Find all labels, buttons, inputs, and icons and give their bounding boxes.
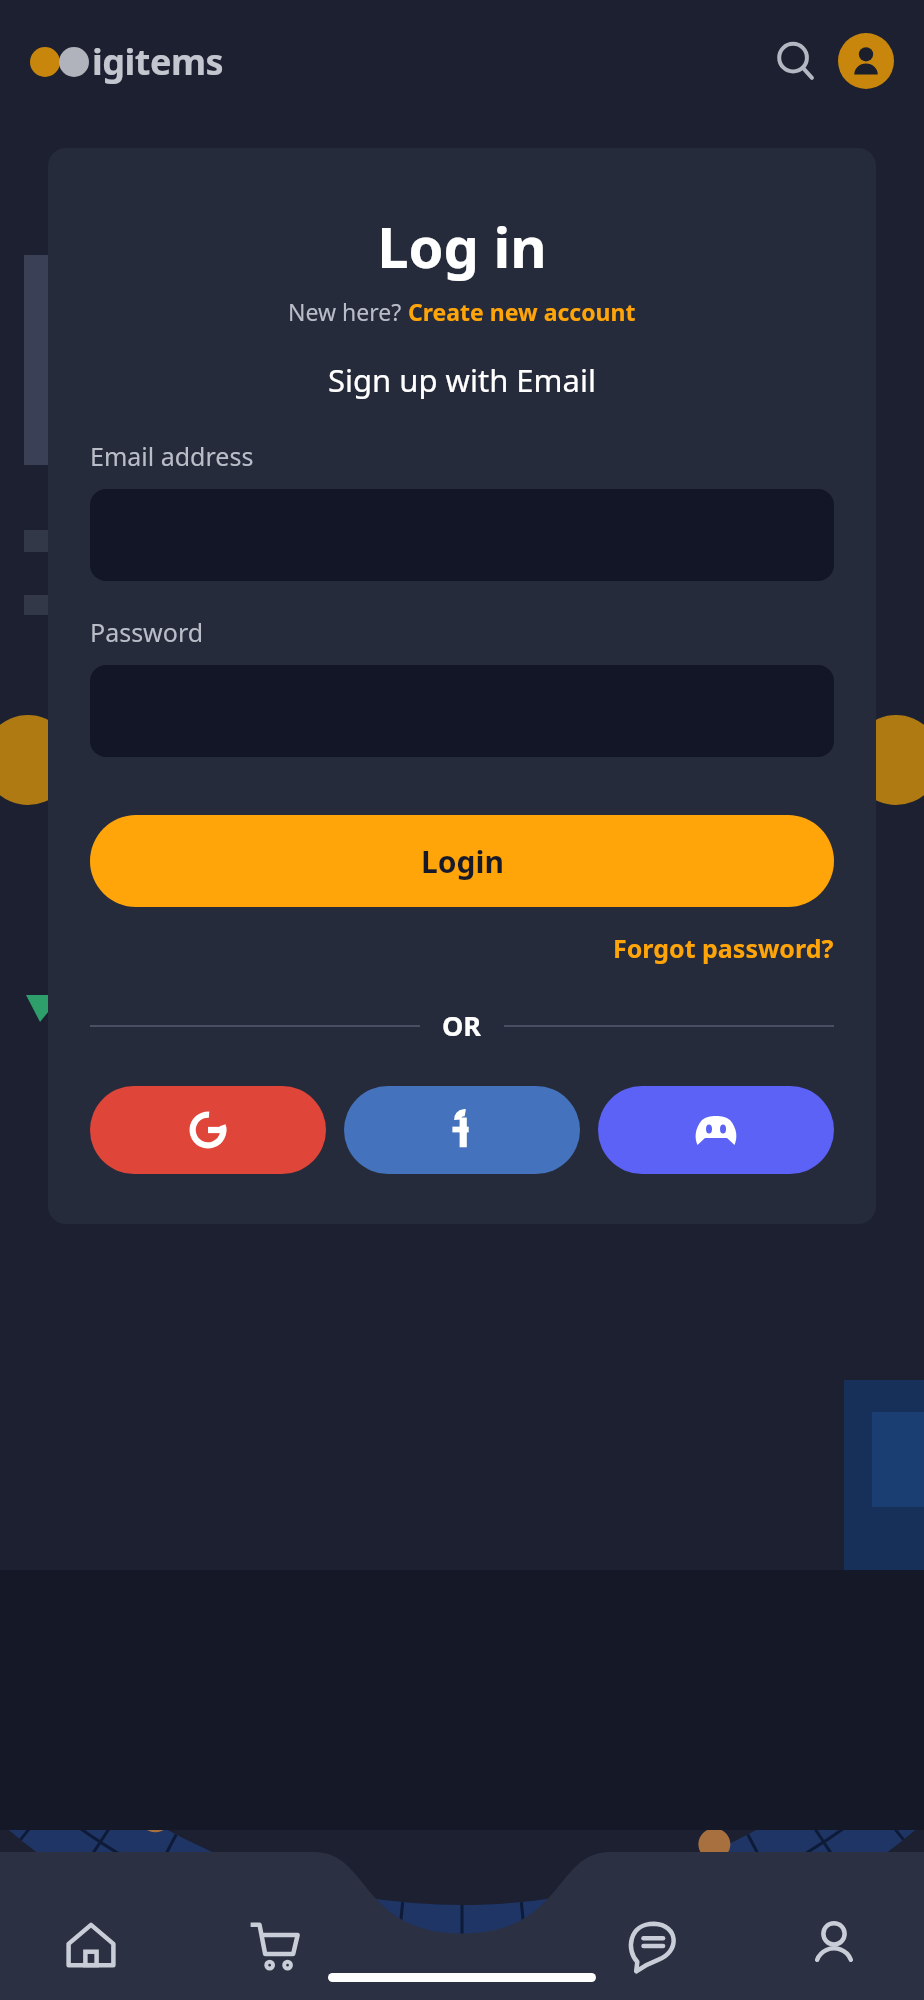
button[interactable]: Sign in with Google [90, 1086, 326, 1174]
button[interactable]: Profile [743, 1910, 924, 1980]
button[interactable]: igitems [30, 37, 224, 86]
staticText: Login [421, 841, 504, 882]
staticText: Create new account [408, 296, 636, 327]
button[interactable]: Search [768, 33, 824, 89]
staticText: Password [90, 615, 204, 649]
button[interactable]: Create new account [408, 296, 636, 327]
button[interactable]: Home [0, 1910, 182, 1980]
staticText: igitems [92, 37, 224, 86]
staticText: Sign up with Email [90, 359, 834, 401]
button[interactable]: Login [90, 815, 834, 907]
staticText: New here? [288, 296, 408, 327]
button[interactable]: Forgot password? [613, 931, 834, 965]
staticText: Forgot password? [613, 931, 834, 965]
button[interactable]: Account [838, 33, 894, 89]
staticText: Email address [90, 439, 254, 473]
button[interactable]: Messages [562, 1910, 743, 1980]
button[interactable]: Sign in with Facebook [344, 1086, 580, 1174]
button[interactable]: Cart [182, 1910, 363, 1980]
button[interactable]: Sign in with Discord [598, 1086, 834, 1174]
staticText: OR [442, 1007, 482, 1044]
staticText: Log in [90, 208, 834, 284]
